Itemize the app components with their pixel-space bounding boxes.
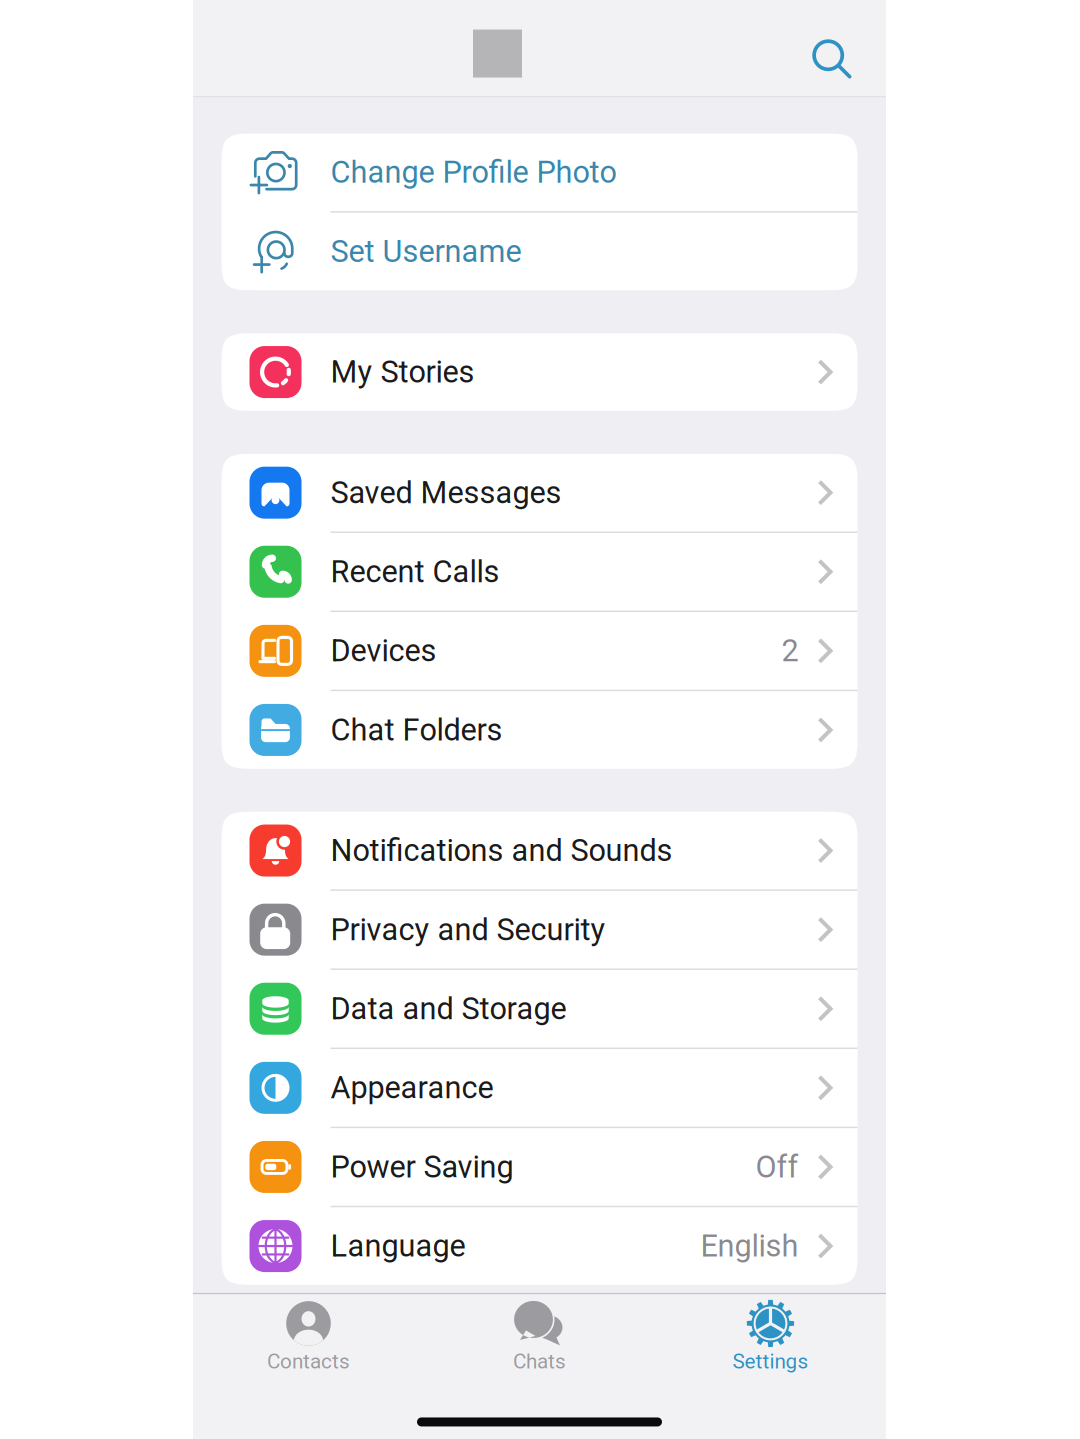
staticText: Change Profile Photo xyxy=(330,154,616,190)
staticText: Contacts xyxy=(267,1349,350,1374)
staticText: Chat Folders xyxy=(330,712,502,748)
button[interactable]: Chat Folders xyxy=(221,691,857,769)
staticText: Saved Messages xyxy=(330,475,561,511)
staticText: Appearance xyxy=(330,1070,493,1106)
button[interactable]: Saved Messages xyxy=(221,454,857,531)
staticText: Power Saving xyxy=(330,1149,513,1185)
button[interactable]: Appearance xyxy=(221,1049,857,1127)
button[interactable]: Settings xyxy=(655,1291,886,1374)
staticText: Settings xyxy=(732,1349,808,1374)
staticText: Devices xyxy=(330,633,436,669)
staticText: Set Username xyxy=(330,233,521,269)
staticText: Data and Storage xyxy=(330,991,566,1027)
button[interactable]: Devices xyxy=(221,612,857,690)
button[interactable]: Privacy and Security xyxy=(221,891,857,968)
button[interactable]: My Stories xyxy=(221,333,857,411)
staticText: Off xyxy=(755,1149,798,1185)
button[interactable]: Search xyxy=(798,25,866,93)
staticText: Notifications and Sounds xyxy=(330,833,672,868)
staticText: Language xyxy=(330,1228,465,1264)
button[interactable]: Notifications and Sounds xyxy=(221,812,857,889)
staticText: English xyxy=(700,1228,798,1264)
button[interactable]: Contacts xyxy=(193,1291,424,1374)
button[interactable]: Set Username xyxy=(221,213,857,290)
button[interactable]: Data and Storage xyxy=(221,970,857,1048)
button[interactable]: Chats xyxy=(424,1291,655,1374)
staticText: Chats xyxy=(513,1349,566,1374)
button[interactable]: Power Saving xyxy=(221,1128,857,1206)
staticText: Recent Calls xyxy=(330,554,499,590)
button[interactable]: Recent Calls xyxy=(221,533,857,611)
staticText: 2 xyxy=(781,633,798,669)
button[interactable]: Language xyxy=(221,1207,857,1285)
staticText: Privacy and Security xyxy=(330,912,605,948)
button[interactable]: Change Profile Photo xyxy=(221,134,857,211)
staticText: My Stories xyxy=(330,354,474,390)
